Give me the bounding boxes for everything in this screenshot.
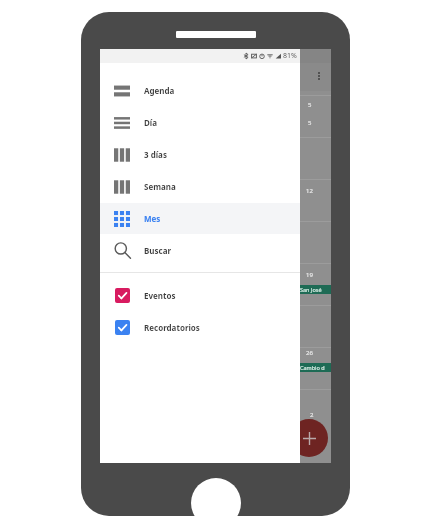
staticText: 3 días bbox=[144, 149, 167, 160]
button[interactable]: 3 días bbox=[100, 139, 300, 170]
staticText: 5 bbox=[308, 101, 312, 109]
staticText: 19 bbox=[306, 271, 313, 279]
button[interactable]: Recordatorios bbox=[100, 312, 300, 343]
staticText: San José bbox=[300, 286, 322, 293]
button[interactable]: Agenda bbox=[100, 75, 300, 106]
staticText: Día bbox=[144, 117, 158, 128]
staticText: Buscar bbox=[144, 245, 172, 256]
staticText: 5 bbox=[308, 119, 312, 127]
staticText: Recordatorios bbox=[144, 322, 200, 333]
staticText: 26 bbox=[306, 349, 313, 357]
staticText: Eventos bbox=[144, 290, 176, 301]
staticText: 12 bbox=[306, 187, 313, 195]
button[interactable]: Semana bbox=[100, 171, 300, 202]
staticText: 81% bbox=[283, 51, 297, 61]
staticText: Semana bbox=[144, 181, 176, 192]
button[interactable]: Mes bbox=[100, 203, 300, 234]
button[interactable]: Día bbox=[100, 107, 300, 138]
button[interactable]: Add event bbox=[290, 419, 328, 457]
button[interactable]: Eventos bbox=[100, 280, 300, 311]
staticText: Agenda bbox=[144, 85, 175, 96]
staticText: Mes bbox=[144, 213, 161, 224]
staticText: Cambio d bbox=[300, 364, 325, 371]
button[interactable]: Buscar bbox=[100, 235, 300, 266]
button[interactable]: More options bbox=[318, 72, 320, 81]
staticText: 2 bbox=[310, 411, 314, 419]
